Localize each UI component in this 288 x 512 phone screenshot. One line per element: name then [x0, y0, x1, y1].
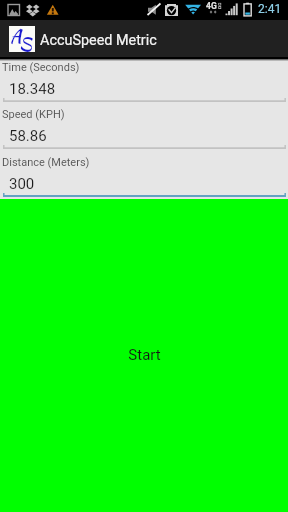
staticText: AccuSpeed Metric [40, 32, 157, 49]
button[interactable]: 18.348 [0, 79, 288, 100]
button[interactable]: AccuSpeed app icon [0, 20, 288, 57]
staticText: A [10, 23, 22, 49]
button[interactable]: 58.86 [0, 126, 288, 147]
button[interactable]: Start [0, 199, 288, 512]
staticText: Time (Seconds) [2, 61, 80, 74]
staticText: Start [128, 346, 161, 364]
staticText: 18.348 [9, 80, 56, 98]
staticText: 300 [9, 175, 35, 193]
button[interactable]: 300 [0, 174, 288, 195]
other: AccuSpeed app icon [9, 26, 35, 52]
staticText: Speed (KPH) [2, 108, 65, 121]
staticText: 2:41 [258, 2, 282, 16]
staticText: Distance (Meters) [2, 156, 90, 169]
staticText: 58.86 [9, 127, 47, 145]
staticText: 4G [206, 1, 217, 11]
staticText: S [19, 31, 32, 57]
